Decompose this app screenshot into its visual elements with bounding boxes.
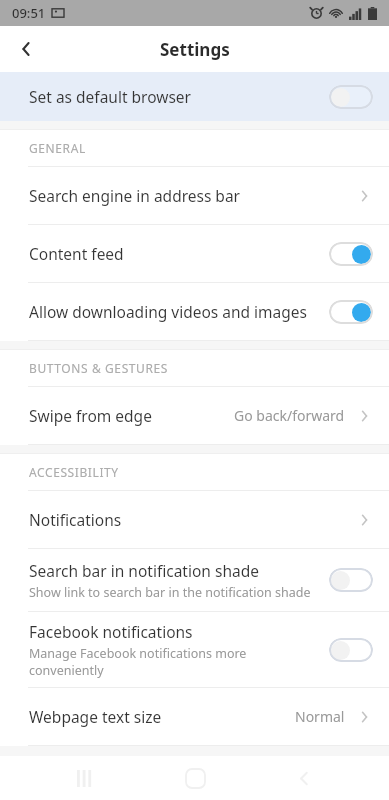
button[interactable]: Toggle off [329, 85, 373, 109]
staticText: Facebook notifications [29, 621, 193, 642]
button[interactable]: Swipe from edge [0, 387, 389, 444]
staticText: Go back/forward [234, 406, 345, 425]
staticText: Search engine in address bar [29, 185, 241, 206]
staticText: BUTTONS & GESTURES [29, 360, 168, 376]
staticText: Set as default browser [29, 86, 329, 107]
staticText: Normal [295, 707, 345, 726]
staticText: Webpage text size [29, 706, 162, 727]
button[interactable]: Recents [61, 756, 109, 800]
button[interactable]: Toggle off [329, 568, 373, 592]
button[interactable]: Toggle on [329, 300, 373, 324]
button[interactable]: Search engine in address bar [0, 167, 389, 224]
staticText: Content feed [29, 243, 124, 264]
button[interactable]: Search bar in notification shade [0, 549, 389, 611]
staticText: 09:51 [12, 4, 46, 22]
staticText: Manage Facebook notifications more conve… [29, 645, 247, 678]
button[interactable]: Set as default browser [0, 72, 389, 121]
staticText: Show link to search bar in the notificat… [29, 584, 311, 601]
button[interactable]: Facebook notifications [0, 612, 389, 687]
button[interactable]: Back [10, 32, 44, 66]
button[interactable]: Allow downloading videos and images [0, 283, 389, 340]
staticText: Notifications [29, 509, 122, 530]
staticText: Search bar in notification shade [29, 560, 259, 581]
button[interactable]: Home [171, 756, 219, 800]
staticText: Settings [160, 38, 230, 61]
staticText: Swipe from edge [29, 405, 152, 426]
button[interactable]: Webpage text size [0, 688, 389, 745]
button[interactable]: Notifications [0, 491, 389, 548]
staticText: ACCESSIBILITY [29, 464, 119, 480]
button[interactable]: Toggle on [329, 242, 373, 266]
button[interactable]: Content feed [0, 225, 389, 282]
staticText: Allow downloading videos and images [29, 301, 307, 322]
staticText: GENERAL [29, 140, 86, 156]
button[interactable]: Toggle off [329, 638, 373, 662]
